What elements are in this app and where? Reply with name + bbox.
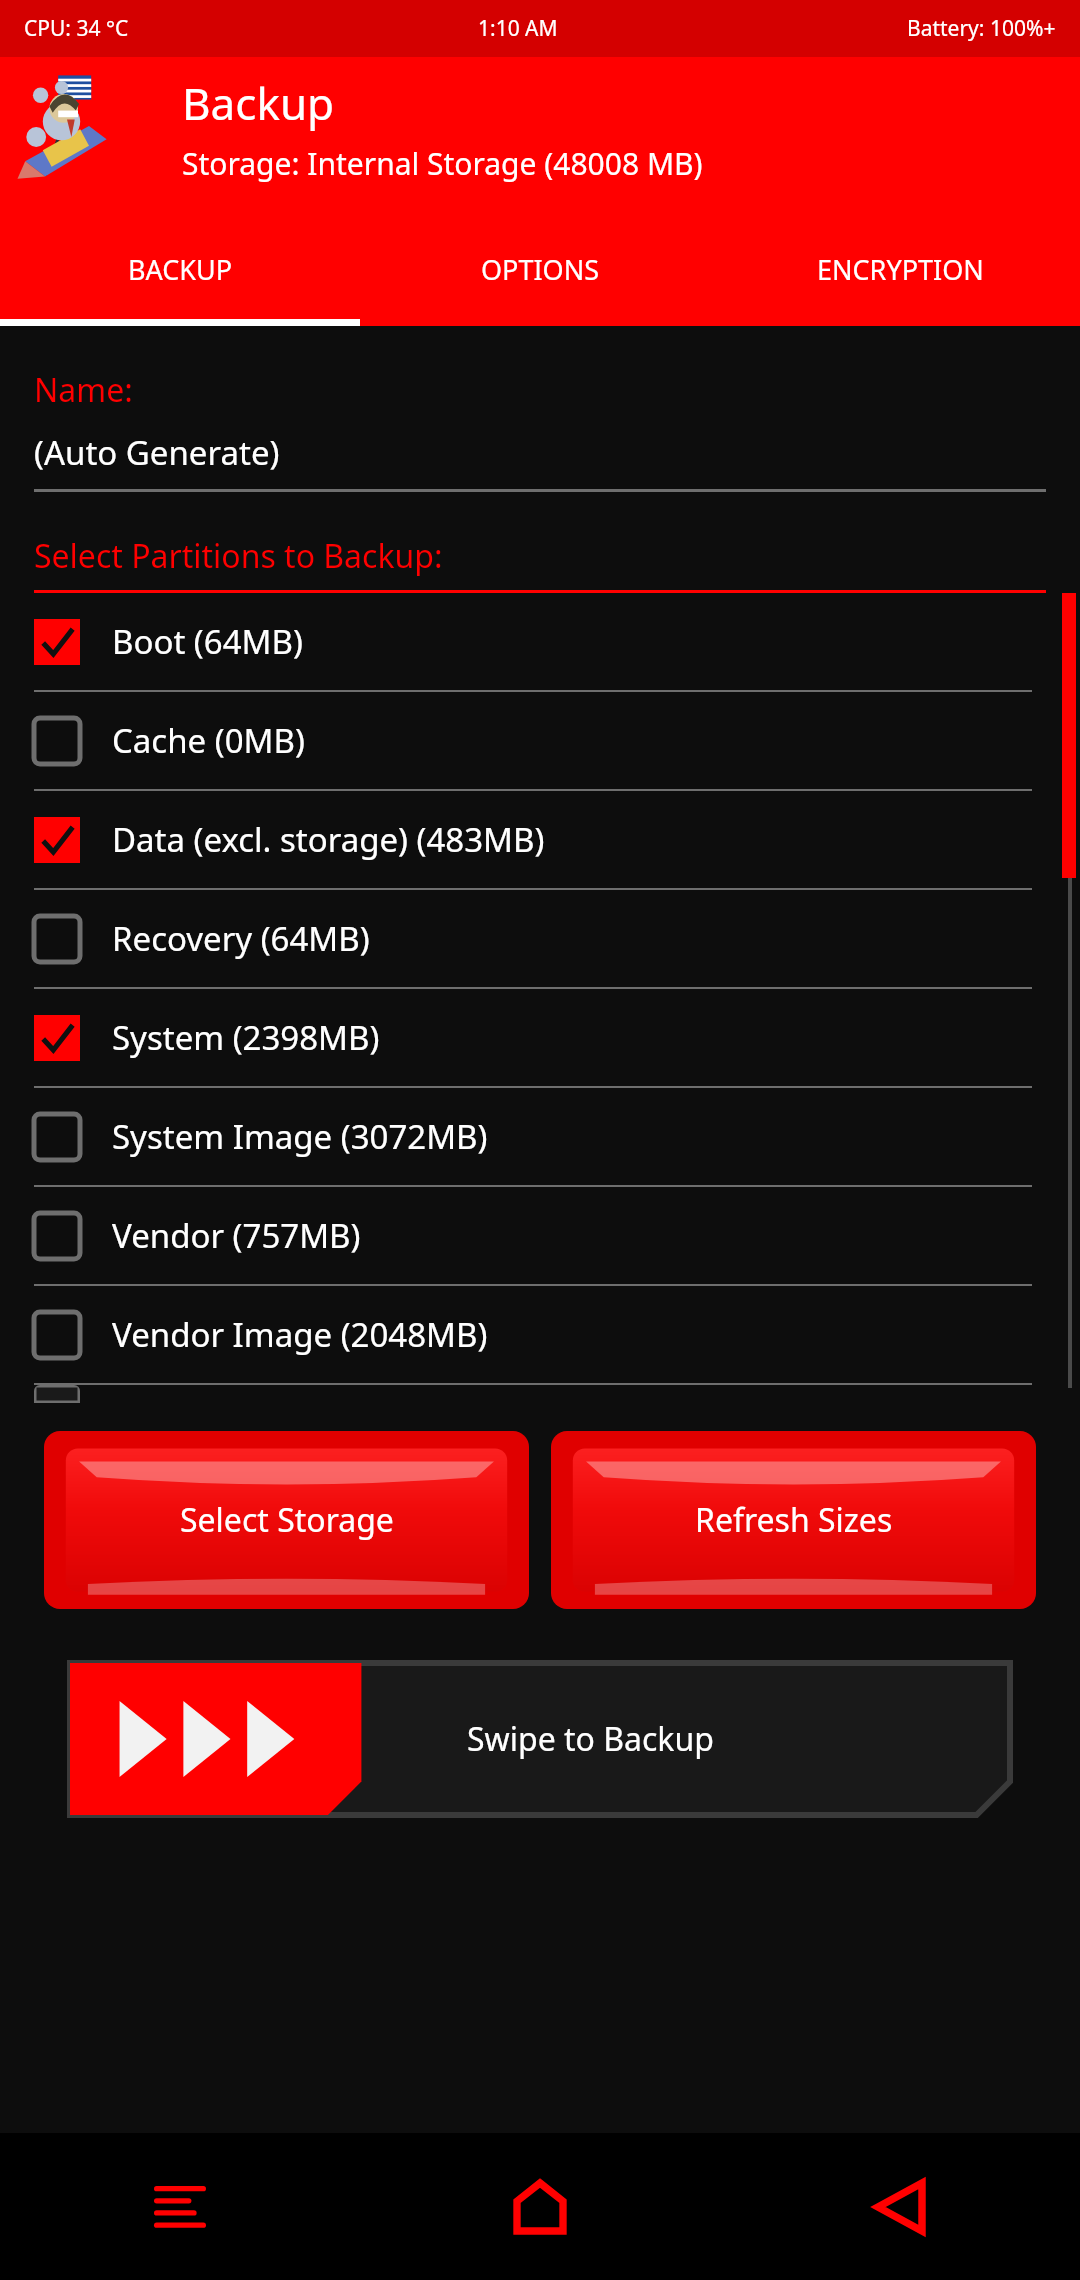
- button[interactable]: Back: [720, 2133, 1080, 2280]
- staticText: CPU: 34 °C: [24, 14, 129, 43]
- staticText: Select Storage: [180, 1498, 394, 1542]
- staticText: Vendor (757MB): [112, 1213, 361, 1258]
- button[interactable]: BACKUP: [0, 219, 360, 319]
- staticText: Backup: [182, 73, 335, 133]
- staticText: Vendor Image (2048MB): [112, 1312, 488, 1357]
- button[interactable]: Home: [360, 2133, 720, 2280]
- button[interactable]: (Auto Generate): [34, 430, 1046, 475]
- staticText: Name:: [34, 368, 133, 412]
- staticText: Recovery (64MB): [112, 916, 370, 961]
- staticText: System Image (3072MB): [112, 1114, 488, 1159]
- button[interactable]: Vendor Image (2048MB): [0, 1286, 1080, 1385]
- button[interactable]: Swipe to Backup: [70, 1663, 1010, 1815]
- staticText: Data (excl. storage) (483MB): [112, 817, 545, 862]
- staticText: Refresh Sizes: [695, 1498, 893, 1542]
- staticText: 1:10 AM: [478, 14, 558, 43]
- staticText: OPTIONS: [481, 251, 600, 288]
- staticText: Select Partitions to Backup:: [34, 534, 443, 578]
- button[interactable]: Recovery (64MB): [0, 890, 1080, 989]
- button[interactable]: ENCRYPTION: [720, 219, 1080, 319]
- button[interactable]: Vendor (757MB): [0, 1187, 1080, 1286]
- staticText: Boot (64MB): [112, 619, 303, 664]
- staticText: Swipe to Backup: [467, 1717, 714, 1761]
- staticText: Storage: Internal Storage (48008 MB): [182, 143, 703, 184]
- staticText: (Auto Generate): [34, 430, 280, 475]
- button[interactable]: Refresh Sizes: [551, 1431, 1036, 1609]
- staticText: Cache (0MB): [112, 718, 305, 763]
- button[interactable]: Select Storage: [44, 1431, 529, 1609]
- button[interactable]: OPTIONS: [360, 219, 720, 319]
- button[interactable]: Recent apps: [0, 2133, 360, 2280]
- staticText: BACKUP: [128, 251, 233, 288]
- staticText: ENCRYPTION: [817, 251, 984, 288]
- button[interactable]: Data (excl. storage) (483MB): [0, 791, 1080, 890]
- staticText: System (2398MB): [112, 1015, 380, 1060]
- button[interactable]: System Image (3072MB): [0, 1088, 1080, 1187]
- button[interactable]: System (2398MB): [0, 989, 1080, 1088]
- staticText: Battery: 100%+: [907, 14, 1056, 43]
- button[interactable]: Cache (0MB): [0, 692, 1080, 791]
- button[interactable]: Boot (64MB): [0, 593, 1080, 692]
